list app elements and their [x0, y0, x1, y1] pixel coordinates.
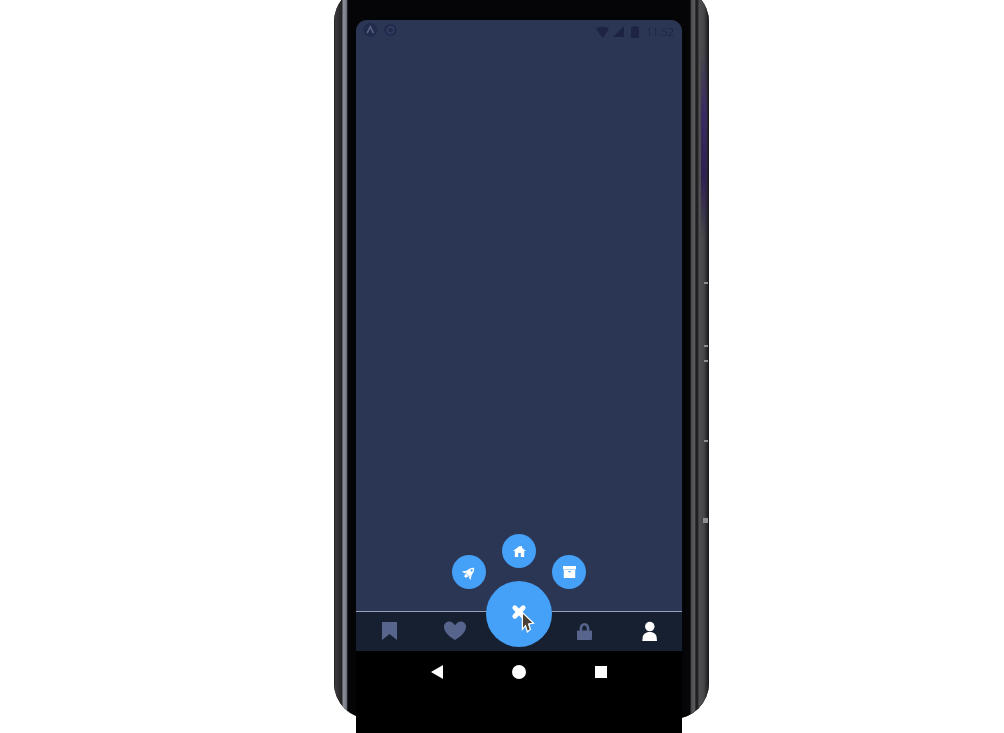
button[interactable]: Back: [417, 651, 457, 693]
button[interactable]: Security: [552, 612, 617, 651]
button[interactable]: Home: [502, 534, 536, 568]
button[interactable]: Profile: [617, 612, 682, 651]
button[interactable]: Recent apps: [581, 651, 621, 693]
button[interactable]: Favorites: [422, 612, 487, 651]
staticText: 11:52: [646, 24, 675, 39]
button[interactable]: Bookmarks: [356, 612, 422, 651]
button[interactable]: Archive: [552, 555, 586, 589]
button[interactable]: Launch: [452, 555, 486, 589]
button[interactable]: Home: [499, 651, 539, 693]
button[interactable]: Close menu: [486, 581, 552, 647]
